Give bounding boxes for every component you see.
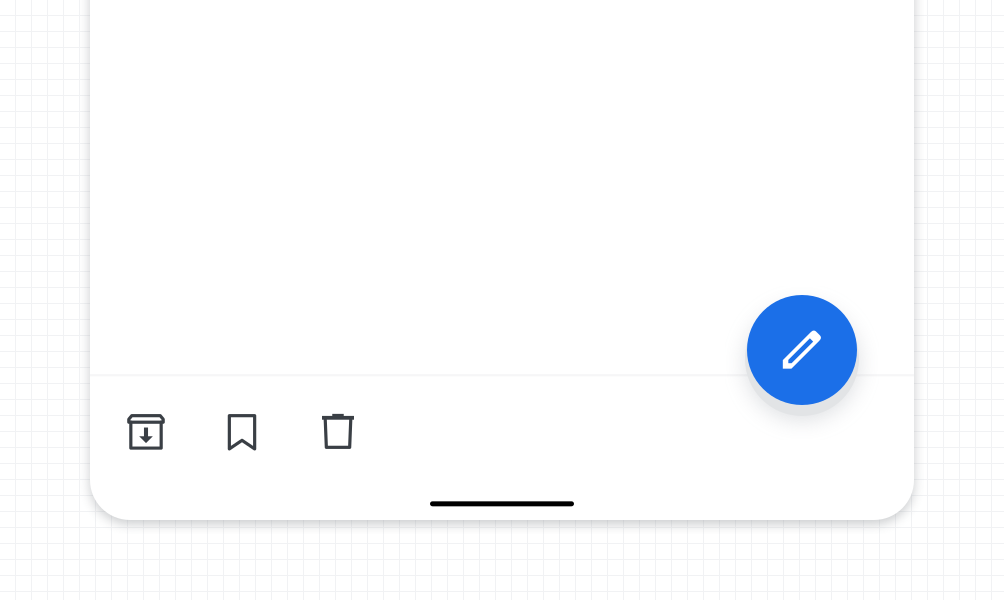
button[interactable]: Bookmark (214, 404, 270, 460)
button[interactable]: Delete (310, 404, 366, 460)
button[interactable]: Compose (747, 295, 857, 405)
button[interactable]: Archive (118, 404, 174, 460)
